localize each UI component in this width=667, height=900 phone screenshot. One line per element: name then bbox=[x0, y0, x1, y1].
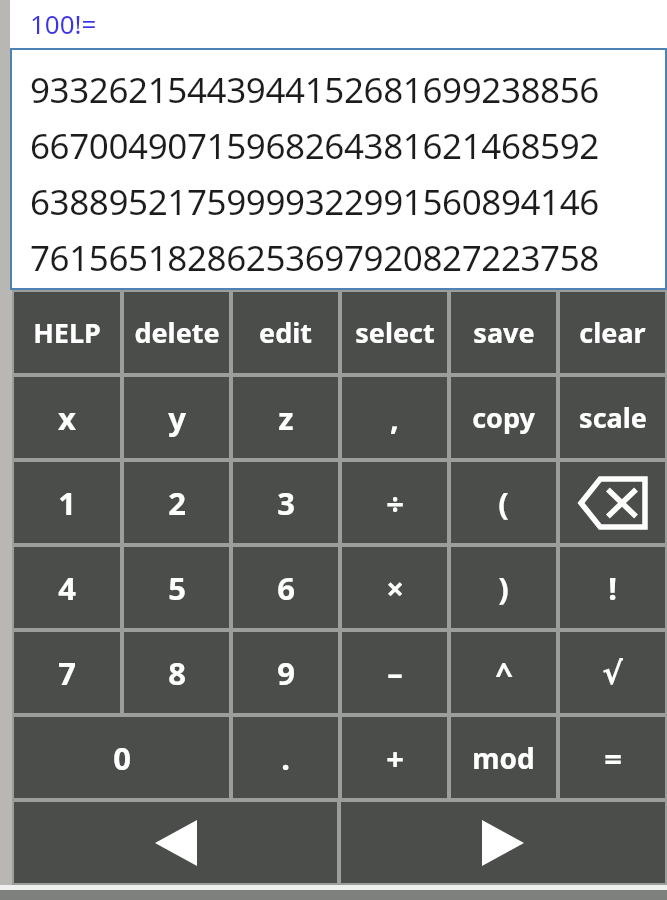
staticText: ^ bbox=[495, 652, 513, 694]
button[interactable]: 6 bbox=[233, 547, 338, 628]
staticText: select bbox=[355, 314, 435, 351]
button[interactable]: ÷ bbox=[342, 462, 447, 543]
staticText: 5 bbox=[168, 567, 186, 609]
button[interactable]: , bbox=[342, 377, 447, 458]
button[interactable]: ( bbox=[451, 462, 556, 543]
staticText: scale bbox=[579, 399, 647, 436]
button[interactable]: ! bbox=[560, 547, 665, 628]
staticText: 3 bbox=[277, 482, 295, 524]
button[interactable]: x bbox=[14, 377, 120, 458]
staticText: x bbox=[58, 397, 76, 439]
staticText: ( bbox=[498, 482, 509, 524]
staticText: edit bbox=[259, 314, 312, 351]
button[interactable]: – bbox=[342, 632, 447, 713]
staticText: copy bbox=[472, 399, 535, 436]
staticText: z bbox=[278, 397, 294, 439]
button[interactable]: = bbox=[560, 717, 665, 798]
button[interactable]: 0 bbox=[14, 717, 229, 798]
button[interactable]: √ bbox=[560, 632, 665, 713]
button[interactable]: 7 bbox=[14, 632, 120, 713]
button[interactable]: Move cursor left bbox=[14, 802, 337, 883]
staticText: 66700490715968264381621468592 bbox=[30, 122, 599, 170]
staticText: × bbox=[386, 567, 404, 609]
staticText: 8 bbox=[168, 652, 186, 694]
button[interactable]: . bbox=[233, 717, 338, 798]
staticText: delete bbox=[134, 314, 220, 351]
staticText: HELP bbox=[33, 314, 101, 351]
staticText: clear bbox=[579, 314, 646, 351]
staticText: , bbox=[390, 397, 399, 439]
staticText: 100!= bbox=[30, 6, 97, 41]
staticText: 9 bbox=[277, 652, 295, 694]
button[interactable]: copy bbox=[451, 377, 556, 458]
staticText: ÷ bbox=[386, 482, 404, 524]
button[interactable]: Move cursor right bbox=[341, 802, 665, 883]
button[interactable]: 3 bbox=[233, 462, 338, 543]
button[interactable]: + bbox=[342, 717, 447, 798]
staticText: save bbox=[473, 314, 535, 351]
button[interactable]: 9 bbox=[233, 632, 338, 713]
staticText: – bbox=[387, 652, 403, 694]
button[interactable]: ) bbox=[451, 547, 556, 628]
staticText: 6 bbox=[277, 567, 295, 609]
staticText: 2 bbox=[168, 482, 186, 524]
staticText: 76156518286253697920827223758 bbox=[30, 234, 599, 282]
button[interactable]: z bbox=[233, 377, 338, 458]
button[interactable]: × bbox=[342, 547, 447, 628]
staticText: mod bbox=[472, 739, 535, 777]
staticText: + bbox=[386, 737, 404, 779]
staticText: √ bbox=[602, 655, 623, 691]
staticText: 1 bbox=[58, 482, 76, 524]
button[interactable]: HELP bbox=[14, 292, 120, 373]
button[interactable]: 4 bbox=[14, 547, 120, 628]
staticText: ) bbox=[498, 567, 509, 609]
button[interactable]: 100!= bbox=[0, 0, 667, 48]
staticText: ! bbox=[608, 567, 617, 609]
button[interactable]: y bbox=[124, 377, 229, 458]
staticText: 93326215443944152681699238856 bbox=[30, 66, 599, 114]
button[interactable]: mod bbox=[451, 717, 556, 798]
staticText: = bbox=[604, 737, 622, 779]
staticText: 63889521759999322991560894146 bbox=[30, 178, 599, 226]
button[interactable]: save bbox=[451, 292, 556, 373]
button[interactable]: 8 bbox=[124, 632, 229, 713]
button[interactable]: clear bbox=[560, 292, 665, 373]
button[interactable]: 5 bbox=[124, 547, 229, 628]
button[interactable]: select bbox=[342, 292, 447, 373]
staticText: y bbox=[168, 397, 186, 439]
button[interactable]: Backspace bbox=[560, 462, 665, 543]
button[interactable]: 2 bbox=[124, 462, 229, 543]
staticText: 0 bbox=[113, 737, 131, 779]
button[interactable]: scale bbox=[560, 377, 665, 458]
button[interactable]: 1 bbox=[14, 462, 120, 543]
staticText: 4 bbox=[58, 567, 76, 609]
button[interactable]: edit bbox=[233, 292, 338, 373]
staticText: 7 bbox=[58, 652, 76, 694]
button[interactable]: delete bbox=[124, 292, 229, 373]
staticText: . bbox=[281, 737, 290, 779]
button[interactable]: ^ bbox=[451, 632, 556, 713]
